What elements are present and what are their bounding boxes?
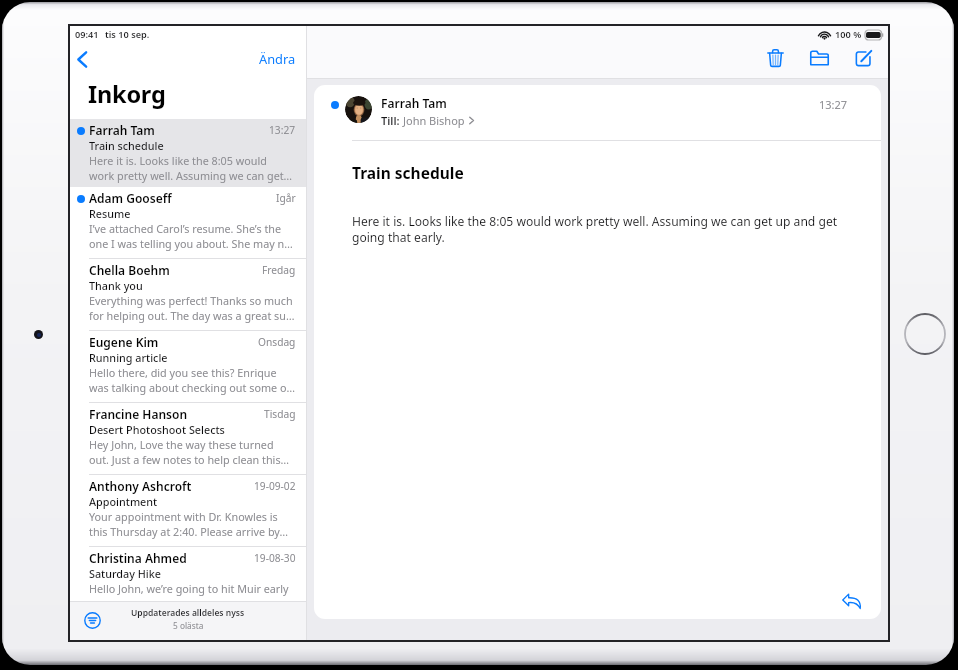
- button[interactable]: Adam Gooseff: [70, 187, 306, 258]
- staticText: out. Just a few notes to help clean this…: [89, 452, 290, 467]
- staticText: was talking about checking out some o…: [89, 380, 296, 395]
- button[interactable]: Farrah Tam: [70, 119, 306, 187]
- staticText: Running article: [89, 350, 168, 365]
- staticText: Hello John, we’re going to hit Muir earl…: [89, 581, 289, 596]
- button[interactable]: Reply: [838, 588, 864, 614]
- staticText: 13:27: [819, 97, 848, 112]
- staticText: Desert Photoshoot Selects: [89, 422, 225, 437]
- staticText: 100 %: [835, 28, 862, 41]
- staticText: Saturday Hike: [89, 566, 161, 581]
- button[interactable]: Anthony Ashcroft: [70, 475, 306, 546]
- staticText: 19-09-02: [254, 479, 296, 493]
- staticText: 09:41: [75, 28, 99, 41]
- staticText: tis 10 sep.: [105, 28, 150, 41]
- button[interactable]: Back: [69, 46, 95, 72]
- staticText: Adam Gooseff: [89, 190, 172, 206]
- staticText: Tisdag: [264, 407, 296, 421]
- button[interactable]: Compose: [848, 43, 878, 73]
- staticText: Anthony Ashcroft: [89, 478, 192, 494]
- staticText: Inkorg: [88, 78, 306, 110]
- staticText: Your appointment with Dr. Knowles is: [89, 509, 278, 524]
- staticText: Thank you: [89, 278, 143, 293]
- staticText: Francine Hanson: [89, 406, 188, 422]
- button[interactable]: Move to folder: [804, 43, 834, 73]
- staticText: Farrah Tam: [381, 95, 447, 111]
- staticText: work pretty well. Assuming we can get…: [89, 168, 293, 183]
- staticText: Hello there, did you see this? Enrique: [89, 365, 277, 380]
- staticText: Everything was perfect! Thanks so much: [89, 293, 293, 308]
- staticText: Train schedule: [352, 162, 464, 183]
- staticText: Chella Boehm: [89, 262, 170, 278]
- button[interactable]: Christina Ahmed: [70, 547, 306, 601]
- staticText: 13:27: [269, 123, 296, 137]
- staticText: 5 olästa: [173, 620, 204, 631]
- staticText: 19-08-30: [254, 551, 296, 565]
- staticText: Onsdag: [258, 335, 296, 349]
- button[interactable]: Francine Hanson: [70, 403, 306, 474]
- staticText: Christina Ahmed: [89, 550, 187, 566]
- staticText: Ändra: [259, 50, 296, 67]
- button[interactable]: Filter: [84, 612, 101, 629]
- staticText: Igår: [276, 191, 296, 205]
- staticText: Resume: [89, 206, 131, 221]
- staticText: for helping out. The day was a great su…: [89, 308, 295, 323]
- button[interactable]: Farrah Tam: [314, 85, 881, 140]
- button[interactable]: Till:: [381, 113, 474, 128]
- button[interactable]: Eugene Kim: [70, 331, 306, 402]
- staticText: Farrah Tam: [89, 122, 155, 138]
- staticText: Here it is. Looks like the 8:05 would: [89, 153, 267, 168]
- staticText: I’ve attached Carol’s resume. She’s the: [89, 221, 282, 236]
- staticText: Till:: [381, 113, 400, 128]
- staticText: Train schedule: [89, 138, 164, 153]
- staticText: Uppdaterades alldeles nyss: [131, 607, 245, 619]
- button[interactable]: Chella Boehm: [70, 259, 306, 330]
- staticText: Here it is. Looks like the 8:05 would wo…: [352, 213, 838, 229]
- staticText: going that early.: [352, 229, 445, 245]
- staticText: Appointment: [89, 494, 158, 509]
- staticText: Eugene Kim: [89, 334, 159, 350]
- button[interactable]: Delete: [760, 43, 790, 73]
- staticText: Hey John, Love the way these turned: [89, 437, 274, 452]
- staticText: John Bishop: [403, 113, 465, 128]
- staticText: this Thursday at 2:40. Please arrive by…: [89, 524, 288, 539]
- staticText: one I was telling you about. She may n…: [89, 236, 293, 251]
- staticText: Fredag: [262, 263, 296, 277]
- button[interactable]: Ändra: [253, 47, 306, 70]
